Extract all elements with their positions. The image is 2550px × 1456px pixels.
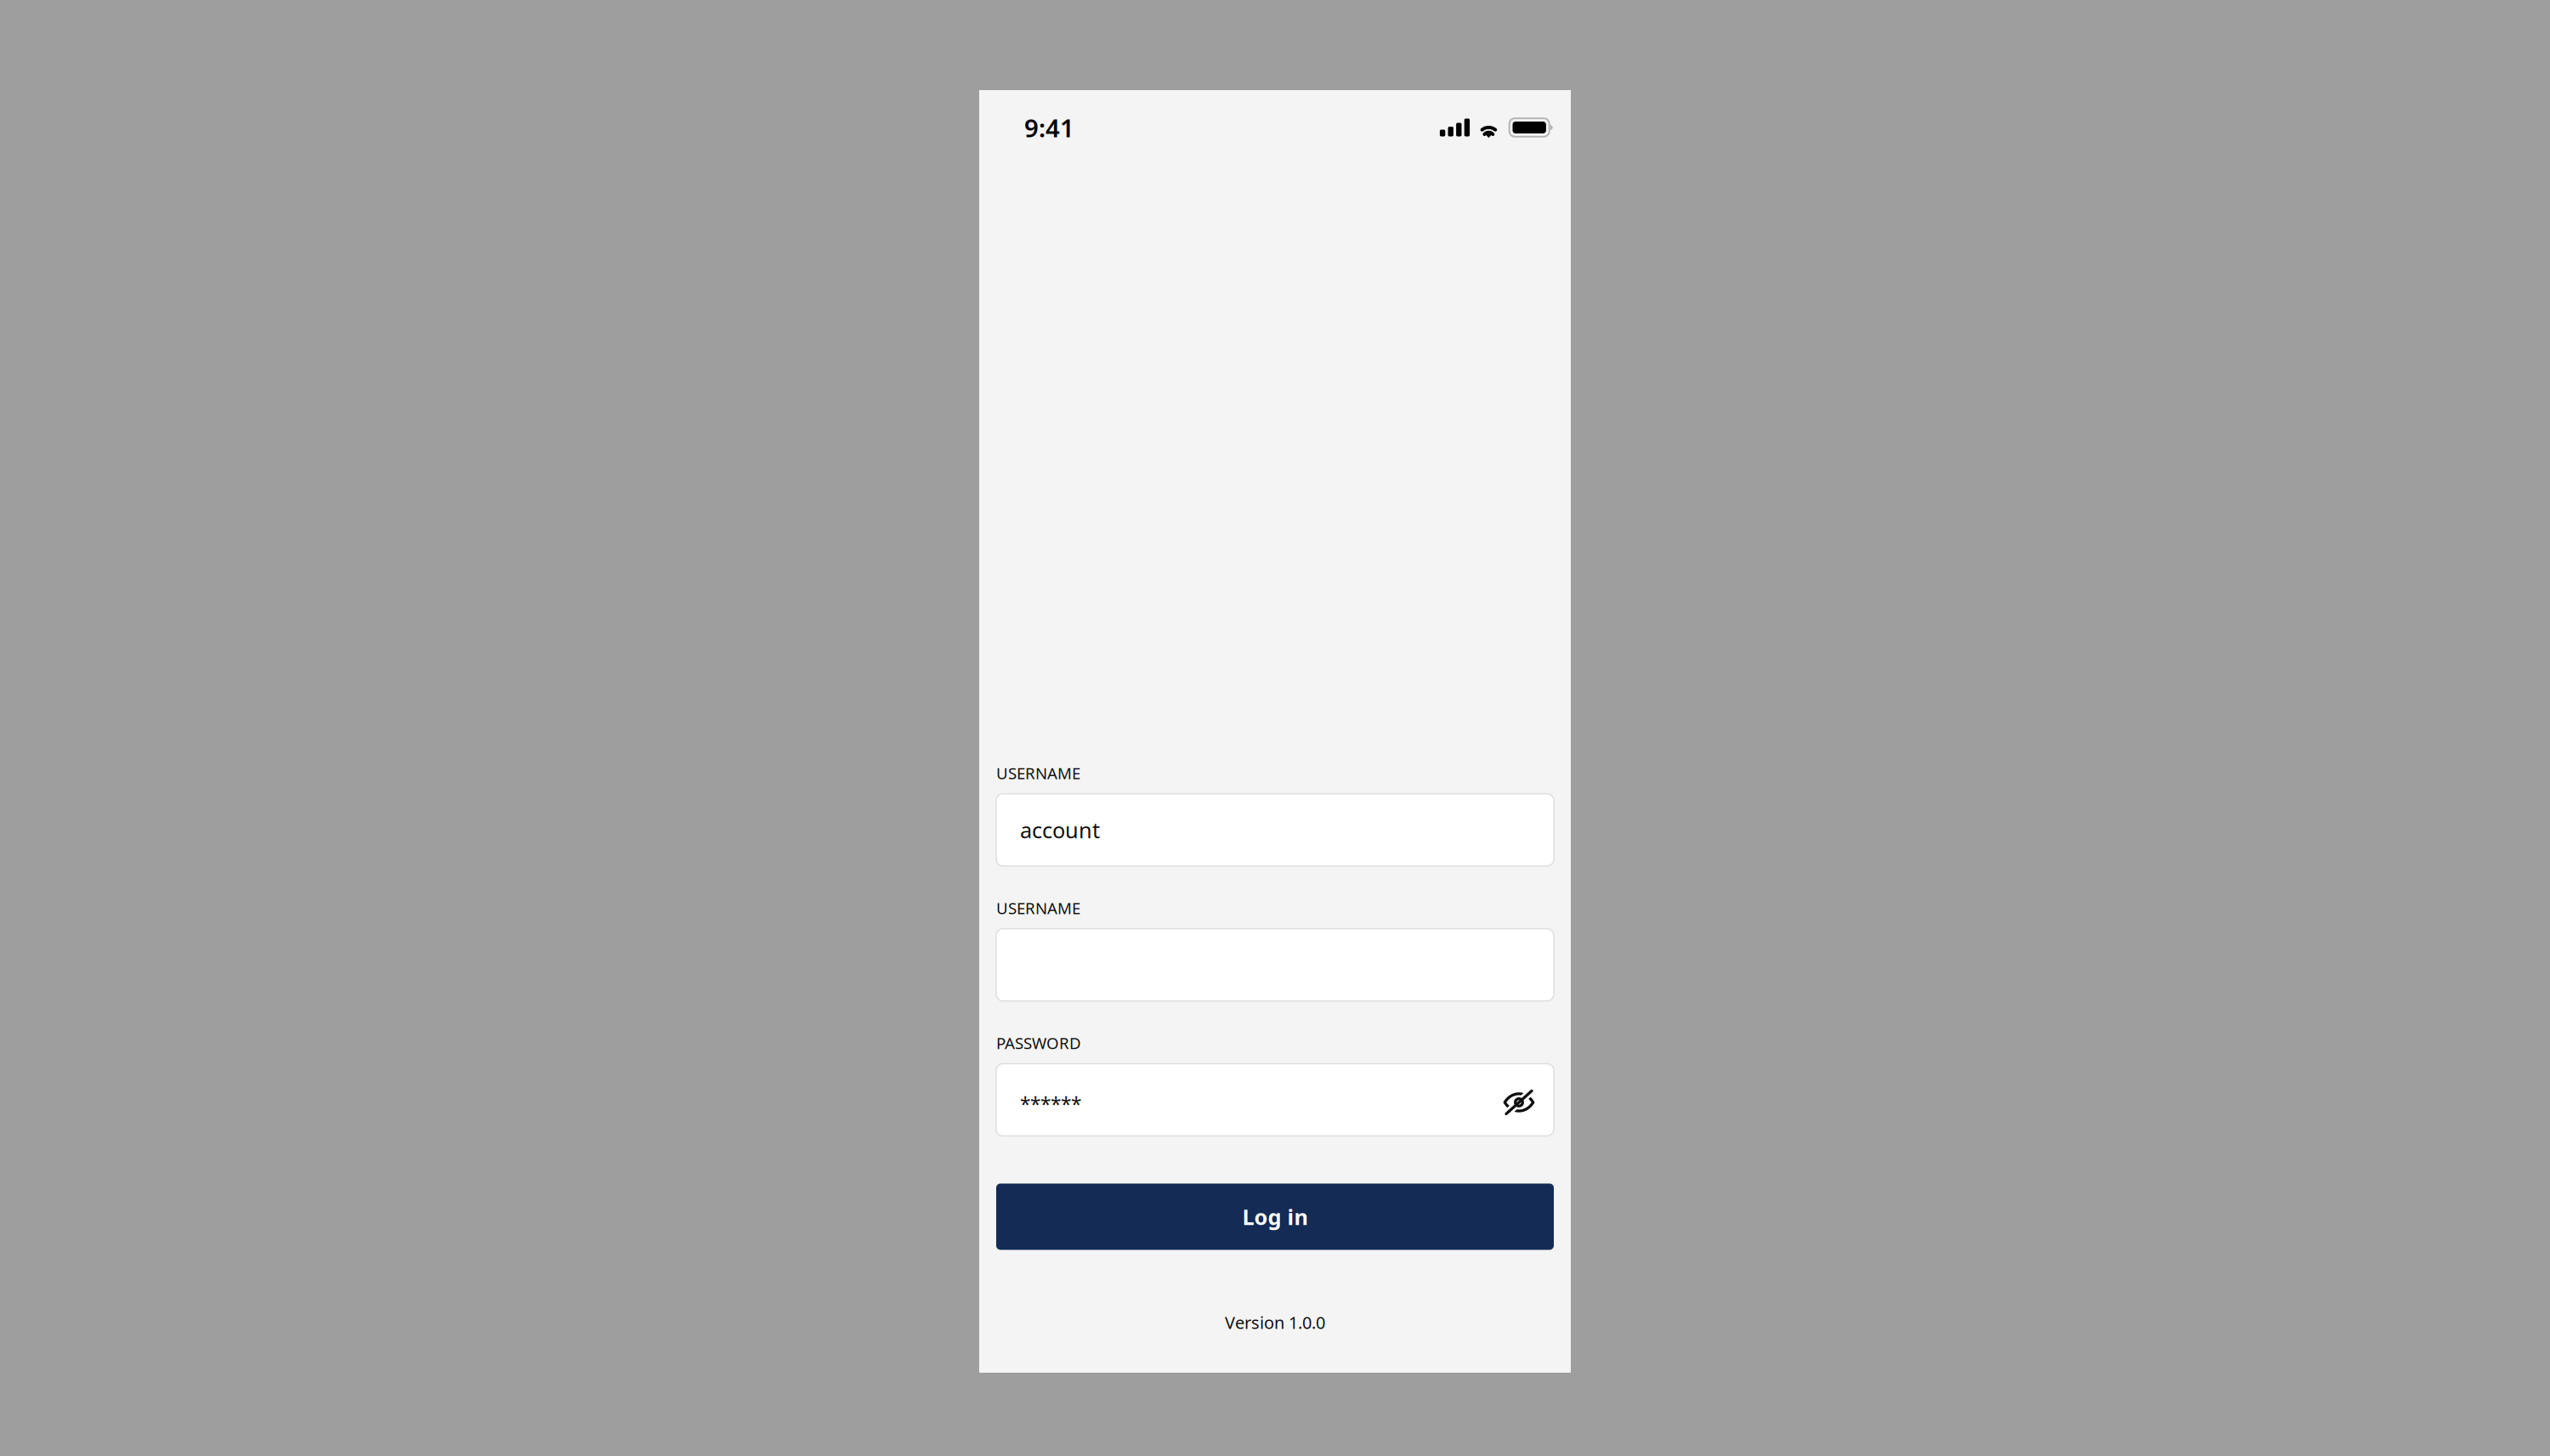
staticText: account xyxy=(1020,816,1100,844)
staticText: USERNAME xyxy=(996,897,1080,919)
staticText: Version 1.0.0 xyxy=(1225,1311,1325,1334)
staticText: Log in xyxy=(1242,1202,1308,1231)
staticText: PASSWORD xyxy=(996,1032,1081,1054)
staticText: USERNAME xyxy=(996,763,1080,784)
button[interactable]: Username xyxy=(996,929,1554,1001)
button[interactable]: Log in xyxy=(996,1183,1554,1250)
staticText: ****** xyxy=(1020,1091,1081,1117)
button[interactable]: Username xyxy=(996,794,1554,866)
button[interactable]: Show password xyxy=(1500,1081,1538,1118)
staticText: 9:41 xyxy=(1024,111,1074,144)
button[interactable]: Password xyxy=(996,1064,1554,1136)
